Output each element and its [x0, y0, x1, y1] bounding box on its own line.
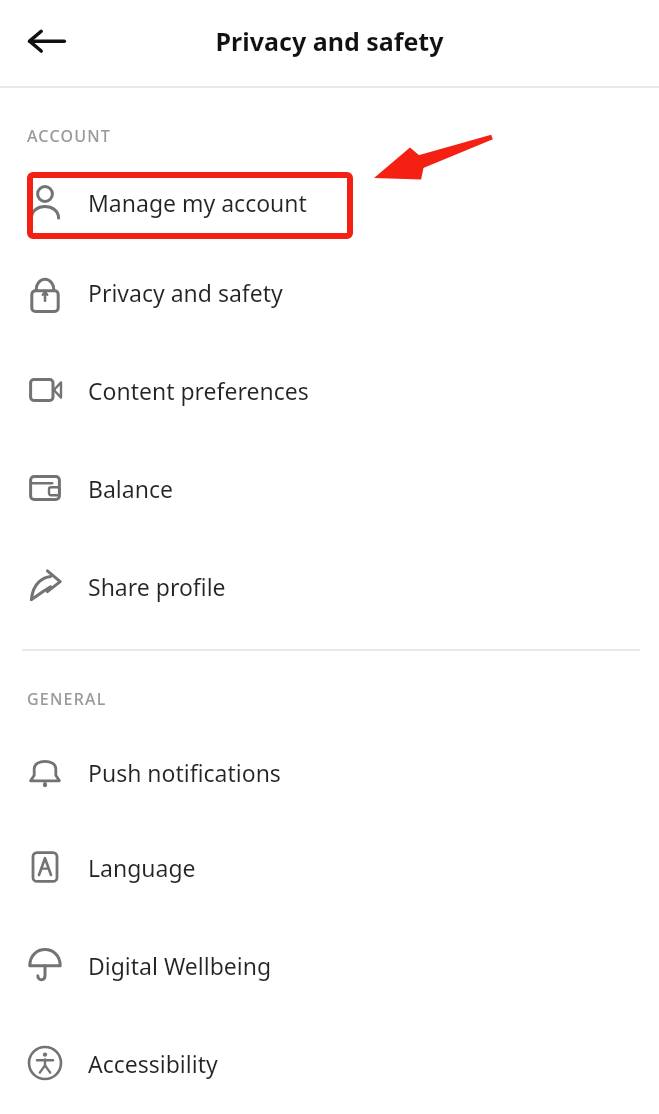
staticText: Language [88, 852, 196, 883]
staticText: ACCOUNT [27, 125, 112, 147]
staticText: GENERAL [27, 688, 107, 710]
staticText: Share profile [88, 571, 226, 602]
button[interactable]: Balance [0, 439, 659, 537]
button[interactable]: Language [0, 818, 659, 916]
staticText: Push notifications [88, 757, 281, 788]
staticText: Balance [88, 473, 173, 504]
staticText: Privacy and safety [0, 24, 659, 58]
button[interactable]: Manage my account [0, 161, 659, 243]
staticText: Privacy and safety [88, 277, 283, 308]
button[interactable]: Privacy and safety [0, 243, 659, 341]
staticText: Content preferences [88, 375, 309, 406]
staticText: Digital Wellbeing [88, 950, 272, 981]
button[interactable]: Share profile [0, 537, 659, 635]
staticText: Manage my account [88, 187, 307, 218]
staticText: Accessibility [88, 1048, 218, 1079]
button[interactable]: Accessibility [0, 1014, 659, 1112]
button[interactable]: Content preferences [0, 341, 659, 439]
button[interactable]: Push notifications [0, 726, 659, 818]
button[interactable]: Back [18, 20, 76, 66]
button[interactable]: Digital Wellbeing [0, 916, 659, 1014]
